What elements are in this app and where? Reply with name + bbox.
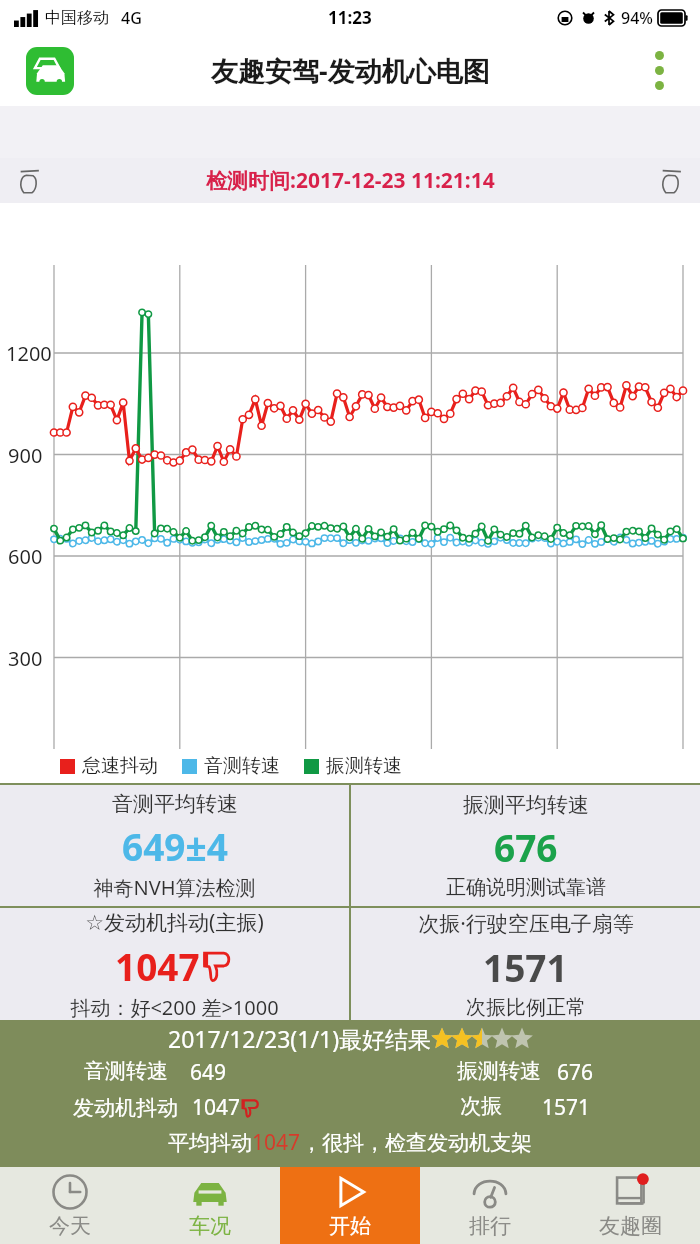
staticText: ，很抖，检查发动机支架 [301, 1130, 532, 1156]
staticText: 怠速抖动 [82, 754, 158, 778]
staticText: 音测转速 [84, 1058, 168, 1084]
staticText: 649±4 [122, 821, 228, 871]
staticText: 20秒 [158, 769, 199, 795]
staticText: 次振·行驶空压电子扇等 [418, 909, 634, 938]
staticText: ☆发动机抖动(主振) [85, 908, 264, 937]
button[interactable]: 振测平均转速 [351, 785, 700, 906]
staticText: 今天 [49, 1213, 91, 1239]
staticText: 300 [8, 645, 43, 672]
button[interactable]: 今天 [0, 1167, 140, 1244]
staticText: 友趣安驾-发动机心电图 [211, 52, 490, 89]
staticText: 900 [8, 442, 43, 469]
staticText: 开始 [329, 1213, 371, 1239]
staticText: 60秒 [409, 769, 450, 795]
staticText: 振测转速 [326, 754, 402, 778]
staticText: 600 [8, 543, 43, 570]
button[interactable]: 音测平均转速 [0, 785, 349, 906]
staticText: 80秒 [535, 769, 576, 795]
staticText: 神奇NVH算法检测 [93, 874, 256, 901]
staticText: 振测转速 [457, 1058, 541, 1084]
button[interactable]: 车况 [140, 1167, 280, 1244]
button[interactable]: More options [647, 43, 672, 98]
staticText: 平均抖动 [168, 1130, 252, 1156]
staticText: 次振比例正常 [466, 995, 586, 1020]
staticText: 振测平均转速 [463, 792, 589, 818]
button[interactable]: 次振·行驶空压电子扇等 [351, 908, 700, 1020]
staticText: 1200 [6, 340, 52, 367]
staticText: 车况 [189, 1213, 231, 1239]
staticText: 1571 [483, 942, 568, 992]
staticText: 0秒 [32, 769, 62, 795]
button[interactable]: 排行 [420, 1167, 560, 1244]
staticText: 94% [621, 7, 653, 29]
button[interactable]: ☆发动机抖动(主振) [0, 908, 349, 1020]
staticText: 676 [494, 822, 558, 872]
staticText: 2017/12/23(1/1)最好结果 [168, 1023, 432, 1054]
staticText: 检测时间:2017-12-23 11:21:14 [206, 166, 495, 195]
button[interactable]: App icon [26, 47, 74, 95]
staticText: 次振 [460, 1093, 502, 1119]
staticText: 649 [190, 1058, 227, 1087]
staticText: 1047 [192, 1093, 241, 1122]
staticText: 4G [121, 7, 142, 29]
staticText: 1047 [252, 1128, 301, 1157]
staticText: 676 [557, 1058, 594, 1087]
button[interactable]: 开始 [280, 1167, 420, 1244]
staticText: 音测平均转速 [112, 791, 238, 817]
staticText: 抖动：好<200 差>1000 [70, 994, 279, 1020]
staticText: 100秒 [661, 769, 700, 795]
staticText: 40秒 [284, 769, 325, 795]
staticText: 音测转速 [204, 754, 280, 778]
button[interactable]: 友趣圈 [560, 1167, 700, 1244]
staticText: 排行 [469, 1213, 511, 1239]
staticText: 11:23 [328, 6, 372, 29]
staticText: 友趣圈 [599, 1213, 662, 1239]
staticText: 1571 [542, 1093, 591, 1122]
staticText: 发动机抖动 [73, 1095, 178, 1121]
staticText: 1047 [115, 941, 200, 991]
staticText: 中国移动 [45, 8, 109, 28]
staticText: 正确说明测试靠谱 [446, 875, 606, 900]
